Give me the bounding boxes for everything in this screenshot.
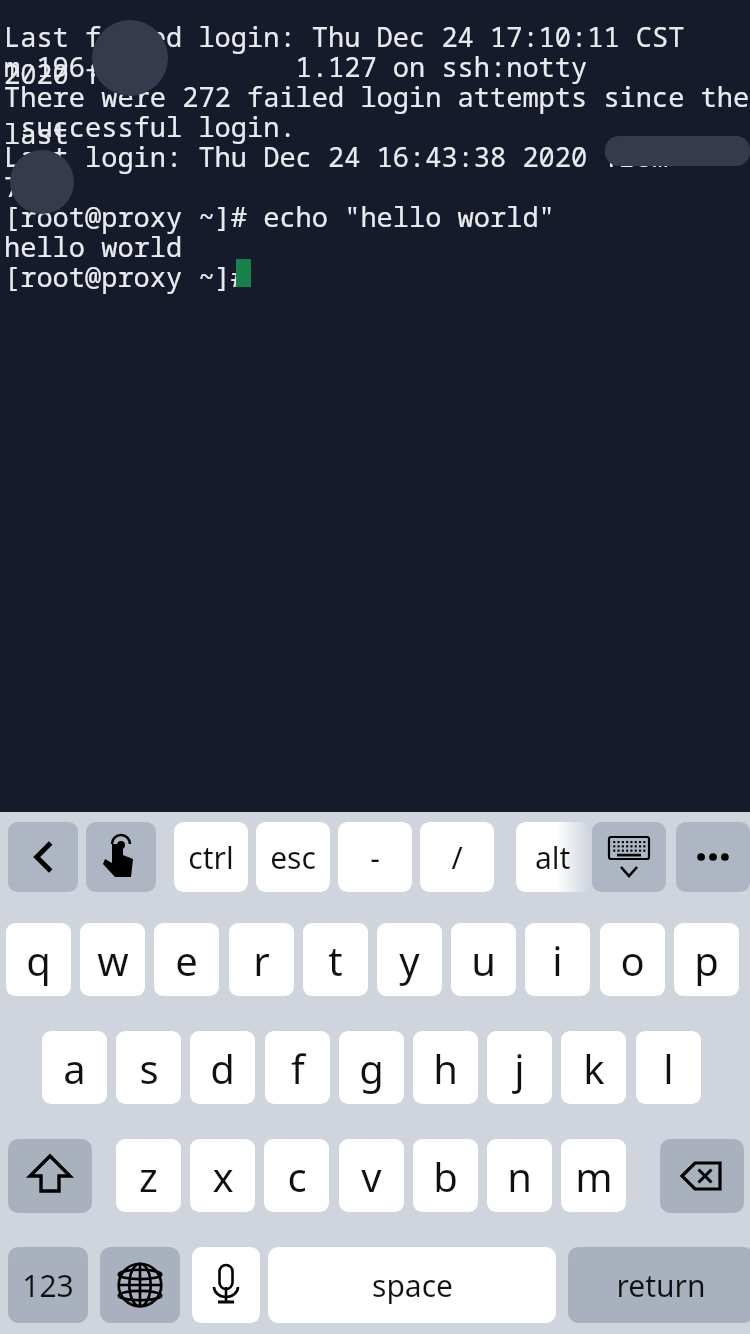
- staticText: a: [63, 1041, 86, 1095]
- button[interactable]: i: [525, 923, 590, 996]
- staticText: c: [287, 1149, 307, 1203]
- button[interactable]: space: [268, 1247, 556, 1323]
- button[interactable]: x: [190, 1139, 255, 1212]
- staticText: u: [471, 933, 496, 987]
- staticText: k: [583, 1041, 605, 1095]
- button[interactable]: Touch mode: [86, 822, 156, 892]
- staticText: m: [575, 1149, 613, 1203]
- staticText: /: [451, 837, 463, 878]
- staticText: l: [663, 1041, 674, 1095]
- button[interactable]: 123: [8, 1247, 88, 1323]
- button[interactable]: q: [6, 923, 71, 996]
- staticText: w: [97, 933, 129, 987]
- staticText: j: [514, 1041, 525, 1095]
- button[interactable]: m: [561, 1139, 626, 1212]
- staticText: r: [253, 933, 270, 987]
- button[interactable]: t: [303, 923, 368, 996]
- button[interactable]: Hide keyboard: [592, 822, 666, 892]
- staticText: b: [433, 1149, 458, 1203]
- button[interactable]: esc: [256, 822, 330, 892]
- button[interactable]: d: [190, 1031, 255, 1104]
- button[interactable]: [0, 0, 750, 812]
- button[interactable]: Back: [8, 822, 78, 892]
- staticText: o: [620, 933, 645, 987]
- staticText: f: [291, 1041, 305, 1095]
- button[interactable]: Voice input: [192, 1247, 260, 1323]
- staticText: i: [552, 933, 563, 987]
- staticText: s: [139, 1041, 159, 1095]
- button[interactable]: f: [265, 1031, 330, 1104]
- staticText: q: [26, 933, 51, 987]
- button[interactable]: b: [413, 1139, 478, 1212]
- staticText: p: [694, 933, 719, 987]
- button[interactable]: w: [80, 923, 145, 996]
- button[interactable]: k: [561, 1031, 626, 1104]
- button[interactable]: p: [674, 923, 739, 996]
- staticText: n: [507, 1149, 532, 1203]
- button[interactable]: alt: [516, 822, 590, 892]
- button[interactable]: Backspace: [660, 1139, 744, 1213]
- staticText: t: [328, 933, 343, 987]
- staticText: return: [616, 1265, 706, 1306]
- staticText: g: [359, 1041, 384, 1095]
- button[interactable]: -: [338, 822, 412, 892]
- button[interactable]: return: [568, 1247, 750, 1323]
- button[interactable]: /: [420, 822, 494, 892]
- button[interactable]: u: [451, 923, 516, 996]
- button[interactable]: v: [339, 1139, 404, 1212]
- staticText: d: [210, 1041, 235, 1095]
- button[interactable]: g: [339, 1031, 404, 1104]
- staticText: z: [139, 1149, 158, 1203]
- button[interactable]: l: [636, 1031, 701, 1104]
- button[interactable]: z: [116, 1139, 181, 1212]
- staticText: e: [175, 933, 198, 987]
- staticText: ctrl: [188, 837, 234, 878]
- button[interactable]: o: [600, 923, 665, 996]
- staticText: v: [361, 1149, 382, 1203]
- button[interactable]: Shift: [8, 1139, 92, 1213]
- staticText: -: [370, 837, 380, 878]
- button[interactable]: Change language: [100, 1247, 180, 1323]
- staticText: y: [399, 933, 420, 987]
- button[interactable]: e: [154, 923, 219, 996]
- staticText: x: [212, 1149, 234, 1203]
- staticText: h: [433, 1041, 458, 1095]
- button[interactable]: c: [264, 1139, 329, 1212]
- button[interactable]: r: [229, 923, 294, 996]
- staticText: 123: [22, 1265, 74, 1306]
- button[interactable]: n: [487, 1139, 552, 1212]
- button[interactable]: ctrl: [174, 822, 248, 892]
- button[interactable]: s: [116, 1031, 181, 1104]
- staticText: space: [372, 1265, 453, 1306]
- button[interactable]: j: [487, 1031, 552, 1104]
- button[interactable]: a: [42, 1031, 107, 1104]
- staticText: esc: [270, 837, 316, 878]
- staticText: alt: [535, 837, 571, 878]
- button[interactable]: h: [413, 1031, 478, 1104]
- button[interactable]: More: [676, 822, 750, 892]
- button[interactable]: y: [377, 923, 442, 996]
